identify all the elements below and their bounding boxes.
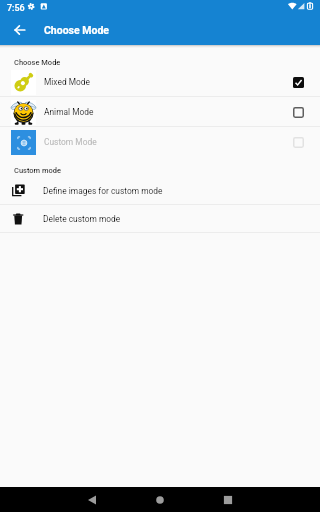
staticText: Choose Mode: [44, 24, 109, 36]
button[interactable]: Define images for custom mode: [0, 177, 320, 205]
staticText: Delete custom mode: [43, 214, 121, 224]
button[interactable]: Back: [78, 487, 106, 512]
button[interactable]: Animal Mode: [0, 97, 320, 127]
button[interactable]: Delete custom mode: [0, 205, 320, 233]
staticText: 7:56: [7, 3, 25, 14]
button[interactable]: Recent apps: [214, 487, 242, 512]
staticText: Define images for custom mode: [43, 186, 163, 196]
staticText: Choose Mode: [14, 58, 61, 67]
staticText: Custom mode: [14, 166, 62, 175]
staticText: Animal Mode: [44, 107, 94, 117]
button[interactable]: Custom Mode: [0, 127, 320, 157]
staticText: Custom Mode: [44, 137, 97, 147]
button[interactable]: Home: [146, 487, 174, 512]
button[interactable]: Back: [8, 18, 32, 42]
button[interactable]: Mixed Mode: [0, 67, 320, 97]
staticText: Mixed Mode: [44, 77, 91, 87]
